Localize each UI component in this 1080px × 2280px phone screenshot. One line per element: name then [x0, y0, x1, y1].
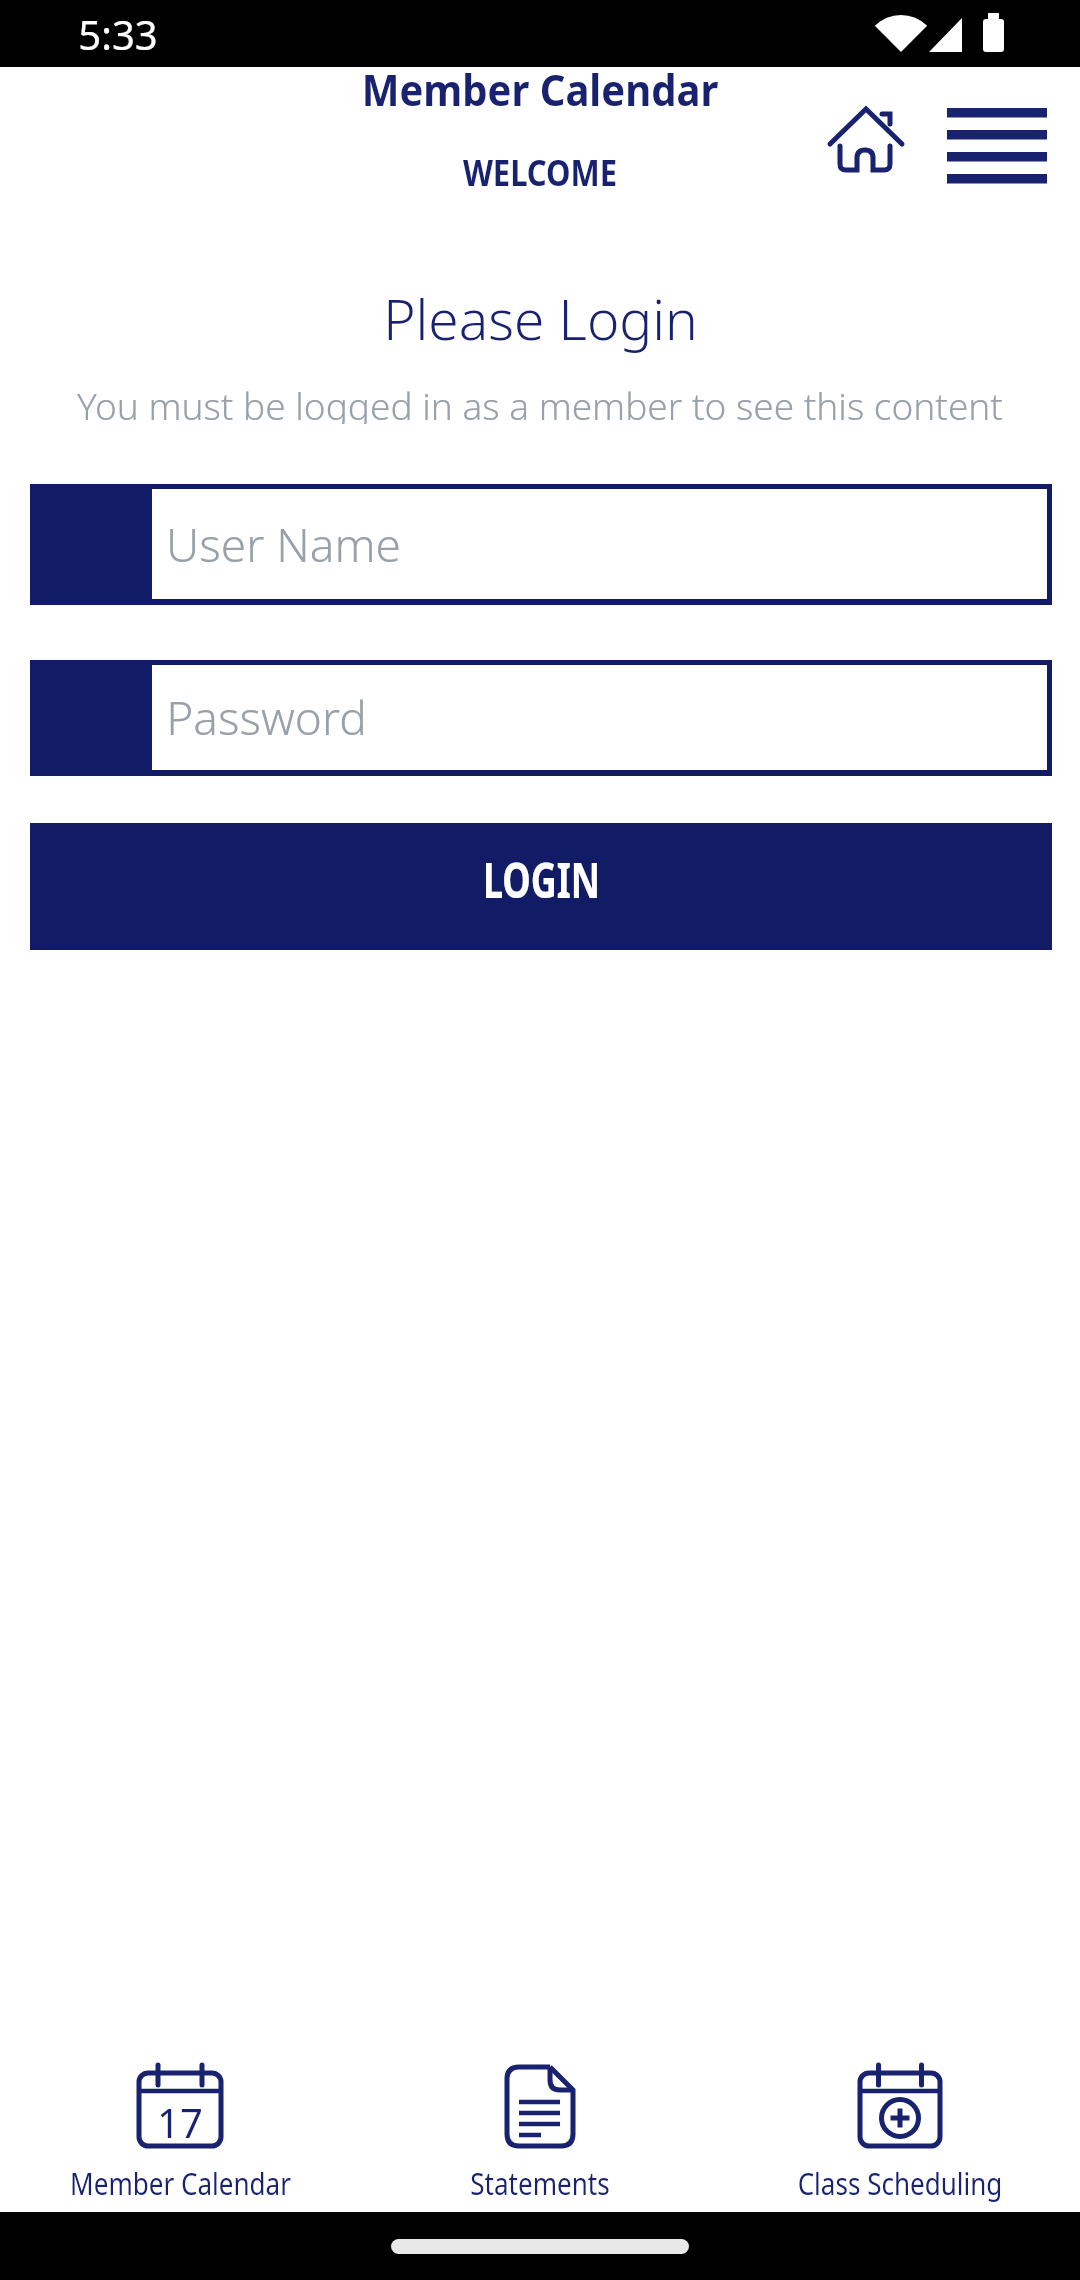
staticText: Password: [166, 686, 367, 749]
staticText: You must be logged in as a member to see…: [77, 380, 1003, 424]
button[interactable]: Password: [30, 660, 1052, 776]
button[interactable]: Class Scheduling: [750, 2052, 1050, 2204]
button[interactable]: 17: [30, 2052, 330, 2204]
staticText: Member Calendar: [70, 2162, 291, 2204]
staticText: Class Scheduling: [797, 2162, 1002, 2204]
staticText: WELCOME: [463, 148, 617, 192]
staticText: 17: [157, 2095, 203, 2139]
button[interactable]: [947, 108, 1047, 183]
button[interactable]: Statements: [390, 2052, 690, 2204]
staticText: User Name: [166, 513, 401, 576]
staticText: Please Login: [383, 281, 698, 356]
button[interactable]: LOGIN: [30, 823, 1052, 950]
button[interactable]: User Name: [30, 484, 1052, 605]
staticText: LOGIN: [483, 847, 600, 912]
staticText: Statements: [470, 2162, 610, 2204]
staticText: 5:33: [78, 7, 158, 61]
button[interactable]: [827, 104, 903, 176]
staticText: Member Calendar: [361, 60, 718, 108]
